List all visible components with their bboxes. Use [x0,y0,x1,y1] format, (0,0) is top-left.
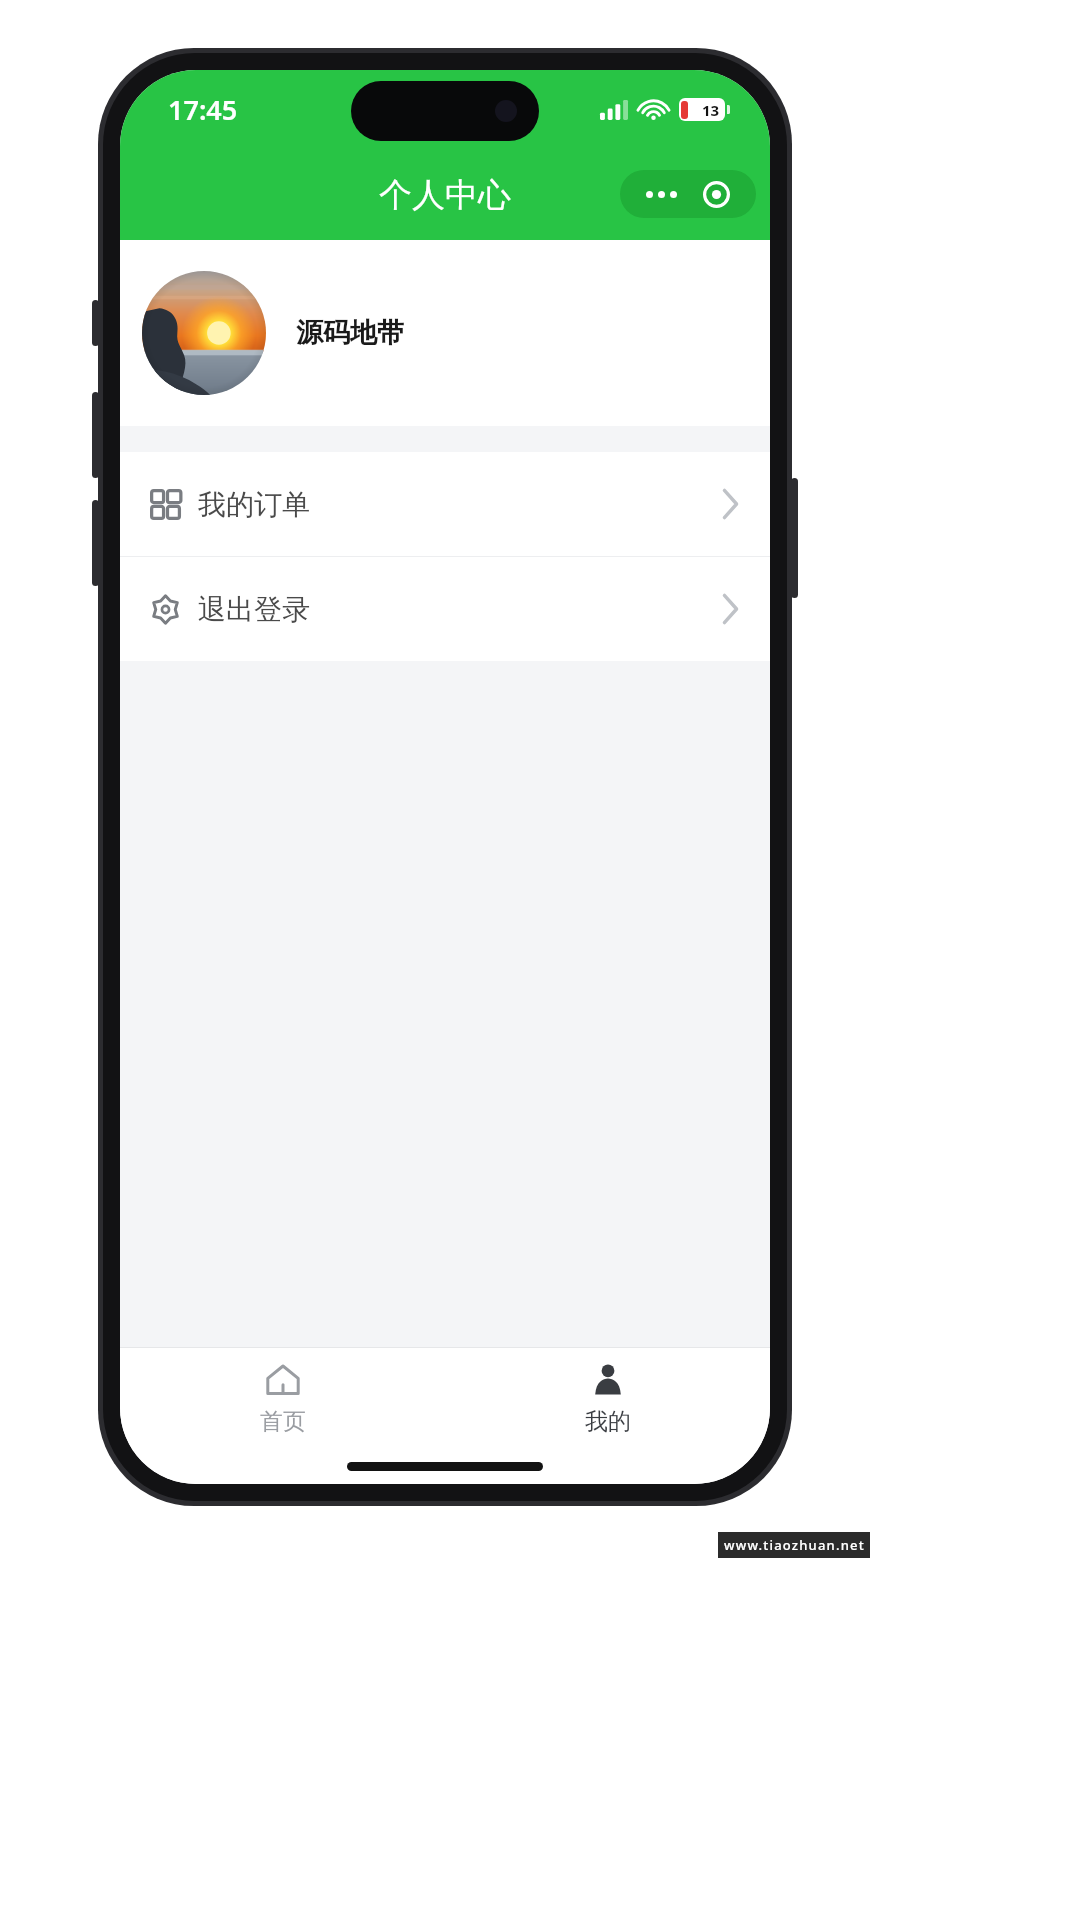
staticText: 我的订单 [198,487,310,522]
staticText: 源码地带 [296,316,404,350]
button[interactable]: 我的 [445,1348,770,1448]
button[interactable]: Mini program menu [620,170,756,218]
button[interactable]: 源码地带 [120,240,770,426]
staticText: 13 [702,100,720,120]
button[interactable]: 首页 [120,1348,445,1448]
staticText: 17:45 [168,91,238,128]
button[interactable]: 我的订单 [120,452,770,556]
button[interactable]: 退出登录 [120,557,770,661]
staticText: 我的 [585,1407,631,1436]
staticText: www.tiaozhuan.net [724,1536,865,1554]
staticText: 首页 [260,1407,306,1436]
staticText: 退出登录 [198,592,310,627]
staticText: 个人中心 [379,174,511,216]
